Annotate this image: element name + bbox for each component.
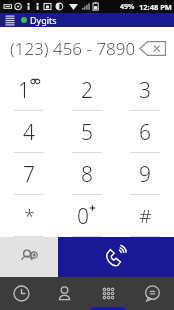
button[interactable]: 9 bbox=[116, 153, 174, 195]
staticText: 0 bbox=[77, 202, 89, 231]
button[interactable]: Backspace bbox=[136, 35, 170, 61]
button[interactable]: Recent calls bbox=[0, 277, 43, 310]
staticText: 8 bbox=[81, 160, 93, 189]
staticText: 5 bbox=[81, 118, 93, 147]
staticText: 4 bbox=[23, 118, 35, 147]
staticText: * bbox=[24, 203, 35, 229]
button[interactable]: 1 bbox=[0, 69, 58, 111]
button[interactable]: Call bbox=[58, 237, 174, 277]
staticText: 49% bbox=[120, 2, 135, 12]
button[interactable]: 0 bbox=[58, 195, 116, 237]
staticText: 9 bbox=[139, 160, 151, 189]
staticText: Dygits bbox=[30, 14, 57, 26]
button[interactable]: Keypad bbox=[86, 277, 130, 310]
button[interactable]: Add to contacts bbox=[0, 237, 58, 277]
button[interactable]: 7 bbox=[0, 153, 58, 195]
staticText: 1 bbox=[18, 76, 30, 105]
staticText: 3 bbox=[139, 76, 151, 105]
button[interactable]: 6 bbox=[116, 111, 174, 153]
button[interactable]: Messages bbox=[130, 277, 174, 310]
button[interactable]: 2 bbox=[58, 69, 116, 111]
button[interactable]: 3 bbox=[116, 69, 174, 111]
staticText: # bbox=[139, 203, 152, 229]
staticText: 2 bbox=[81, 76, 93, 105]
staticText: (123) 456 - 7890 bbox=[10, 37, 136, 60]
staticText: 6 bbox=[139, 118, 151, 147]
button[interactable]: 5 bbox=[58, 111, 116, 153]
button[interactable]: # bbox=[116, 195, 174, 237]
button[interactable]: 8 bbox=[58, 153, 116, 195]
button[interactable]: Contacts bbox=[43, 277, 86, 310]
button[interactable]: Dygits bbox=[21, 14, 57, 26]
staticText: 12:48 PM bbox=[139, 2, 172, 12]
button[interactable]: * bbox=[0, 195, 58, 237]
button[interactable]: 4 bbox=[0, 111, 58, 153]
staticText: 7 bbox=[23, 160, 35, 189]
button[interactable]: Open navigation menu bbox=[3, 13, 17, 27]
